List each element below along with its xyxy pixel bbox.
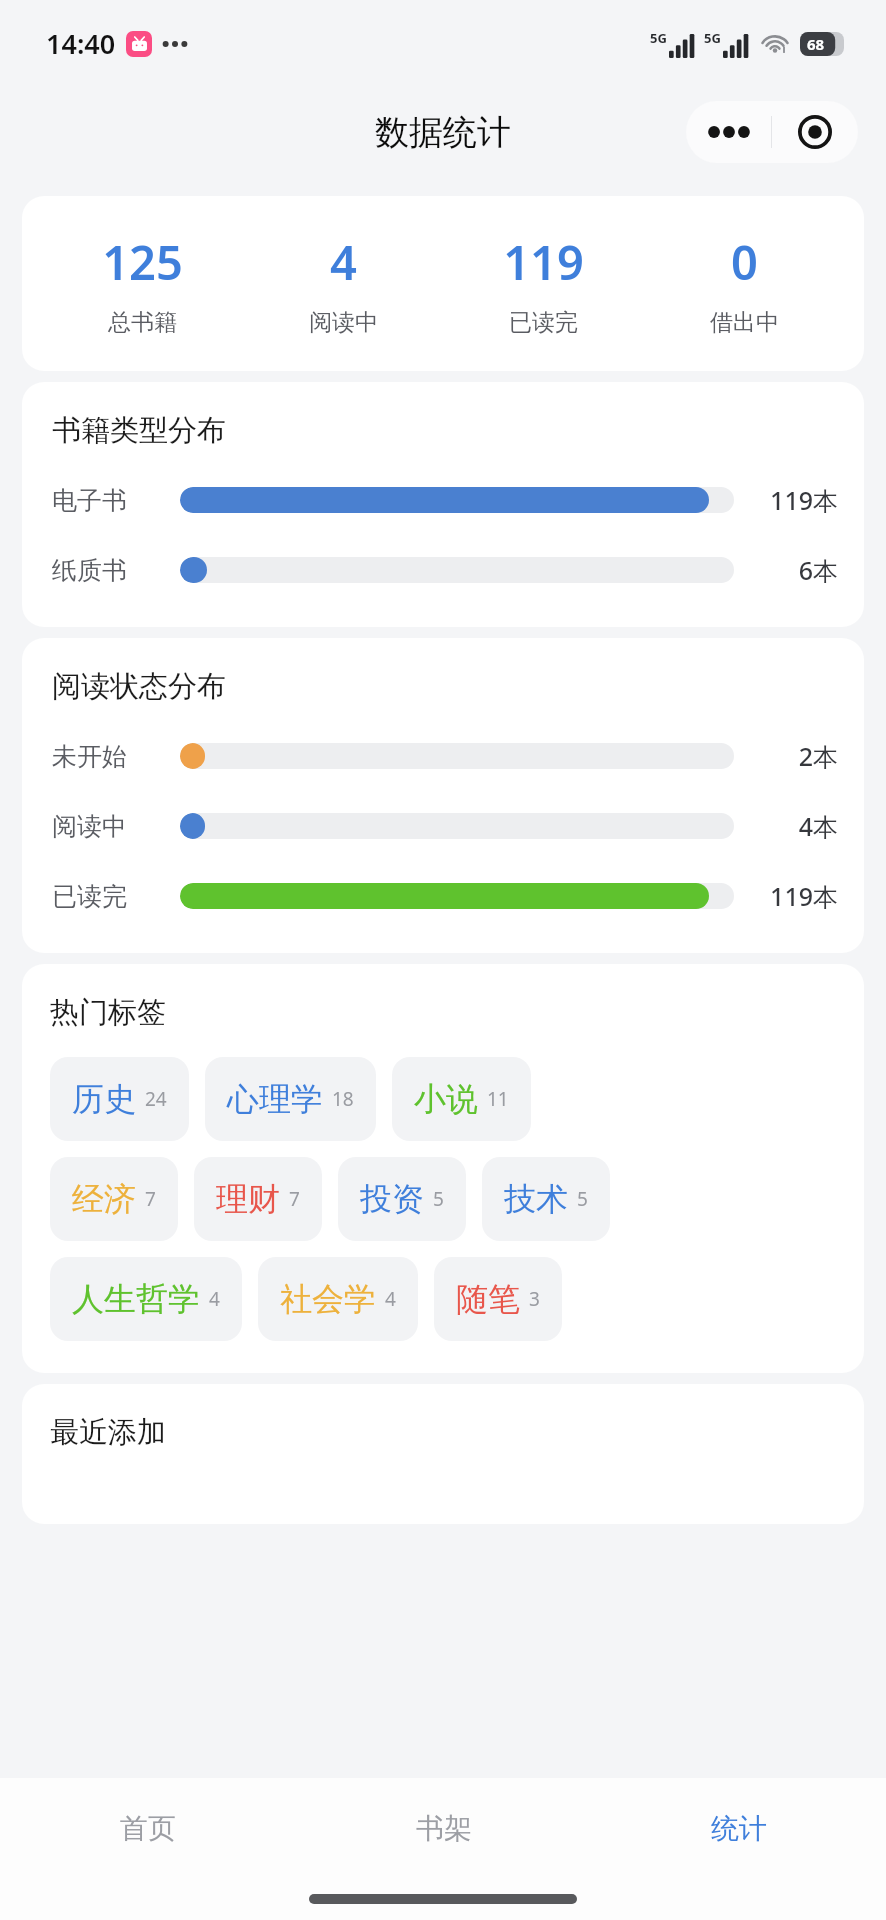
staticText: 未开始 — [52, 741, 180, 772]
button[interactable]: 社会学 — [258, 1257, 418, 1341]
staticText: 3 — [529, 1286, 540, 1312]
button[interactable]: 理财 — [194, 1157, 322, 1241]
staticText: 首页 — [120, 1811, 176, 1846]
staticText: 11 — [487, 1086, 509, 1112]
button[interactable]: 历史 — [50, 1057, 189, 1141]
staticText: 借出中 — [710, 308, 779, 337]
staticText: 热门标签 — [50, 994, 166, 1031]
button[interactable]: 人生哲学 — [50, 1257, 242, 1341]
staticText: 理财 — [216, 1179, 280, 1219]
button[interactable]: Close — [772, 101, 858, 163]
button[interactable]: 技术 — [482, 1157, 610, 1241]
button[interactable]: 4 — [263, 230, 423, 337]
staticText: 阅读中 — [52, 811, 180, 842]
staticText: 阅读状态分布 — [52, 668, 226, 705]
button[interactable]: 未开始 — [52, 733, 838, 779]
button[interactable]: 已读完 — [52, 873, 838, 919]
staticText: 投资 — [360, 1179, 424, 1219]
staticText: 阅读中 — [309, 308, 378, 337]
staticText: 统计 — [711, 1811, 767, 1846]
staticText: 书籍类型分布 — [52, 412, 226, 449]
button[interactable]: 电子书 — [52, 477, 838, 523]
staticText: 历史 — [72, 1079, 136, 1119]
button[interactable]: 125 — [62, 230, 222, 337]
button[interactable]: 经济 — [50, 1157, 178, 1241]
button[interactable]: 119 — [463, 230, 623, 337]
button[interactable]: 心理学 — [205, 1057, 376, 1141]
staticText: 4 — [330, 230, 357, 294]
button[interactable]: More — [686, 101, 771, 163]
staticText: 6本 — [798, 553, 838, 587]
staticText: 119本 — [770, 483, 838, 517]
staticText: 总书籍 — [108, 308, 177, 337]
staticText: 125 — [102, 230, 183, 294]
button[interactable]: 小说 — [392, 1057, 531, 1141]
staticText: 已读完 — [52, 881, 180, 912]
button[interactable]: 热门标签 — [22, 964, 864, 1373]
staticText: 68 — [807, 34, 825, 54]
staticText: 5 — [433, 1186, 444, 1212]
staticText: 4本 — [798, 809, 838, 843]
staticText: 小说 — [414, 1079, 478, 1119]
staticText: 经济 — [72, 1179, 136, 1219]
staticText: 5G — [704, 29, 721, 47]
staticText: 119 — [503, 230, 584, 294]
staticText: 纸质书 — [52, 555, 180, 586]
button[interactable]: 阅读状态分布 — [22, 638, 864, 953]
staticText: 5G — [650, 29, 667, 47]
button[interactable]: 书籍类型分布 — [22, 382, 864, 627]
staticText: 5 — [577, 1186, 588, 1212]
staticText: 最近添加 — [50, 1414, 166, 1451]
staticText: 社会学 — [280, 1279, 376, 1319]
button[interactable]: 统计 — [591, 1778, 886, 1878]
staticText: 随笔 — [456, 1279, 520, 1319]
button[interactable]: 首页 — [0, 1778, 296, 1878]
staticText: 数据统计 — [375, 111, 511, 154]
staticText: 已读完 — [509, 308, 578, 337]
button[interactable]: 随笔 — [434, 1257, 562, 1341]
staticText: 4 — [209, 1286, 220, 1312]
staticText: 24 — [145, 1086, 167, 1112]
button[interactable]: 125 — [22, 196, 864, 371]
button[interactable]: 最近添加 — [22, 1384, 864, 1524]
staticText: 书架 — [416, 1811, 472, 1846]
button[interactable]: 0 — [664, 230, 824, 337]
staticText: 人生哲学 — [72, 1279, 200, 1319]
staticText: 119本 — [770, 879, 838, 913]
button[interactable]: 阅读中 — [52, 803, 838, 849]
staticText: 7 — [289, 1186, 300, 1212]
staticText: 7 — [145, 1186, 156, 1212]
staticText: 技术 — [504, 1179, 568, 1219]
button[interactable]: 书架 — [296, 1778, 591, 1878]
staticText: 14:40 — [46, 25, 116, 62]
button[interactable]: 投资 — [338, 1157, 466, 1241]
staticText: 2本 — [798, 739, 838, 773]
button[interactable]: 纸质书 — [52, 547, 838, 593]
staticText: 18 — [332, 1086, 354, 1112]
staticText: 4 — [385, 1286, 396, 1312]
staticText: 0 — [731, 230, 758, 294]
staticText: 心理学 — [227, 1079, 323, 1119]
staticText: 电子书 — [52, 485, 180, 516]
